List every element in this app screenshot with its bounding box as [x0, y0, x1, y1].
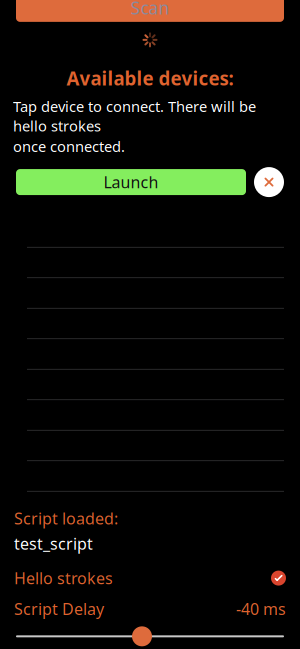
button[interactable]: Device slot: [16, 370, 284, 400]
button[interactable]: Device slot: [16, 339, 284, 370]
staticText: Script Delay: [14, 598, 104, 619]
button[interactable]: Device slot: [16, 431, 284, 461]
staticText: -40 ms: [236, 598, 286, 619]
button[interactable]: Device slot: [16, 217, 284, 248]
staticText: test_script: [14, 533, 93, 554]
button[interactable]: Scan: [16, 0, 284, 22]
button[interactable]: Launch: [16, 169, 246, 195]
staticText: Scan: [130, 0, 169, 19]
button[interactable]: Device slot: [16, 400, 284, 431]
staticText: Tap device to connect. There will be hel…: [13, 97, 256, 136]
button[interactable]: Device slot: [16, 248, 284, 278]
button[interactable]: Device slot: [16, 309, 284, 339]
staticText: Script loaded:: [14, 508, 118, 529]
button[interactable]: Disconnect: [254, 167, 284, 197]
staticText: once connected.: [13, 137, 125, 156]
staticText: Hello strokes: [14, 567, 113, 589]
button[interactable]: Hello strokes: [0, 566, 300, 590]
button[interactable]: Device slot: [16, 278, 284, 309]
button[interactable]: Device slot: [16, 461, 284, 492]
staticText: Available devices:: [66, 66, 233, 91]
staticText: Launch: [103, 171, 158, 193]
